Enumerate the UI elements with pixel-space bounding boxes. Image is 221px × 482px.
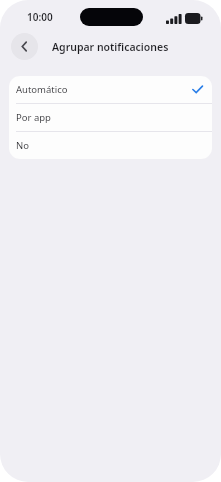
button[interactable]: Por app bbox=[9, 104, 212, 131]
staticText: Agrupar notificaciones bbox=[52, 40, 169, 54]
staticText: Automático bbox=[16, 83, 68, 96]
button[interactable]: Automático bbox=[9, 76, 212, 103]
staticText: Por app bbox=[16, 111, 51, 124]
staticText: 10:00 bbox=[27, 10, 53, 24]
button[interactable]: Back bbox=[11, 33, 38, 60]
staticText: No bbox=[16, 139, 29, 152]
button[interactable]: No bbox=[9, 132, 212, 159]
